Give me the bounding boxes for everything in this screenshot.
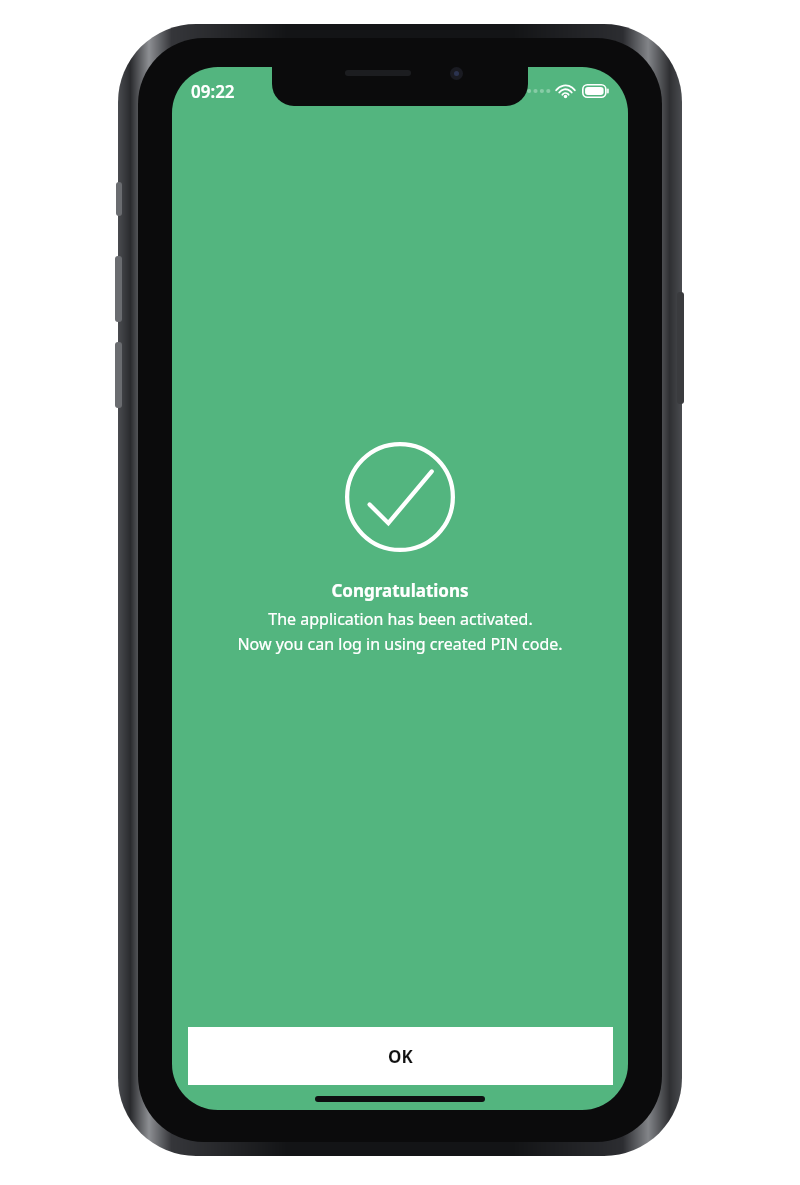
other: Success <box>344 441 456 553</box>
staticText: Congratulations <box>331 579 469 602</box>
staticText: Now you can log in using created PIN cod… <box>237 633 563 655</box>
staticText: The application has been activated. <box>268 608 533 630</box>
staticText: OK <box>388 1045 413 1068</box>
staticText: 09:22 <box>191 80 235 103</box>
button[interactable]: OK <box>188 1027 613 1085</box>
